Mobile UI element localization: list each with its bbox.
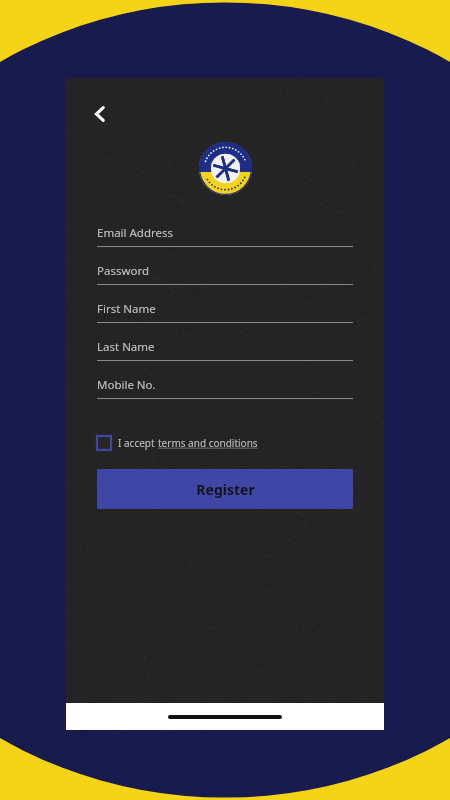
other: Home indicator bbox=[168, 715, 282, 719]
staticText: terms and conditions bbox=[158, 436, 258, 450]
staticText: I accept bbox=[118, 436, 158, 450]
button[interactable]: First Name bbox=[97, 301, 156, 317]
button[interactable]: Mobile No. bbox=[97, 377, 156, 393]
button[interactable]: Register bbox=[97, 469, 353, 509]
staticText: Register bbox=[196, 480, 255, 499]
button[interactable]: Email Address bbox=[97, 225, 174, 241]
button[interactable]: Back bbox=[80, 94, 120, 134]
button[interactable]: Password bbox=[97, 263, 150, 279]
button[interactable]: I accept bbox=[97, 434, 258, 452]
button[interactable]: Last Name bbox=[97, 339, 155, 355]
